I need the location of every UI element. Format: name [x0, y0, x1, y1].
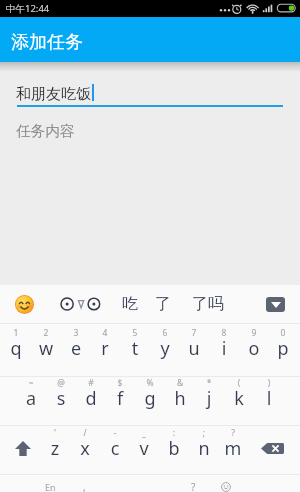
staticText: / — [70, 427, 100, 439]
staticText: ' — [40, 427, 70, 439]
staticText: % — [135, 377, 165, 389]
staticText: f — [105, 386, 135, 411]
staticText: y — [150, 336, 180, 361]
staticText: _ — [129, 427, 159, 439]
staticText: 0 — [268, 327, 298, 339]
button[interactable]: 0 — [268, 324, 298, 374]
button[interactable]: & — [165, 374, 195, 424]
staticText: v — [129, 436, 159, 461]
staticText: 吃 — [122, 294, 138, 314]
staticText: ? — [218, 427, 248, 439]
button[interactable]: / — [70, 424, 100, 474]
staticText: n — [189, 436, 219, 461]
button[interactable]: , — [69, 478, 99, 492]
staticText: 任务内容 — [16, 122, 75, 141]
staticText: 6 — [150, 327, 180, 339]
staticText: , — [83, 480, 86, 492]
button[interactable]: 吃 — [119, 292, 141, 316]
staticText: a — [16, 386, 46, 411]
button[interactable]: $ — [105, 374, 135, 424]
staticText: j — [194, 386, 224, 411]
staticText: # — [76, 377, 106, 389]
staticText: 5 — [120, 327, 150, 339]
button[interactable]: ' — [40, 424, 70, 474]
button[interactable]: 5 — [120, 324, 150, 374]
staticText: o — [239, 336, 269, 361]
staticText: b — [159, 436, 189, 461]
staticText: 3 — [61, 327, 91, 339]
button[interactable]: ~ — [16, 374, 46, 424]
staticText: m — [218, 436, 248, 461]
staticText: 和朋友吃饭 — [16, 85, 91, 104]
staticText: 中午12:44 — [6, 2, 50, 15]
button[interactable]: 了 — [152, 292, 174, 316]
button[interactable]: @ — [46, 374, 76, 424]
button[interactable]: Emoji panel — [212, 478, 240, 492]
staticText: c — [100, 436, 130, 461]
button[interactable]: # — [76, 374, 106, 424]
button[interactable]: _ — [129, 424, 159, 474]
button[interactable]: - — [100, 424, 130, 474]
button[interactable]: ; — [189, 424, 219, 474]
button[interactable]: ( — [224, 374, 254, 424]
staticText: En — [45, 481, 56, 492]
button[interactable]: % — [135, 374, 165, 424]
staticText: i — [209, 336, 239, 361]
button[interactable]: 3 — [61, 324, 91, 374]
staticText: t — [120, 336, 150, 361]
button[interactable]: En — [34, 478, 66, 492]
staticText: * — [194, 377, 224, 389]
staticText: ) — [254, 377, 284, 389]
staticText: k — [224, 386, 254, 411]
button[interactable]: 7 — [179, 324, 209, 374]
staticText: s — [46, 386, 76, 411]
staticText: 了吗 — [192, 294, 224, 314]
button[interactable]: ? — [179, 478, 207, 492]
button[interactable]: 6 — [150, 324, 180, 374]
staticText: x — [70, 436, 100, 461]
staticText: h — [165, 386, 195, 411]
button[interactable]: : — [159, 424, 189, 474]
staticText: e — [61, 336, 91, 361]
button[interactable]: Backspace — [250, 424, 295, 472]
button[interactable]: * — [194, 374, 224, 424]
staticText: r — [90, 336, 120, 361]
button[interactable]: Emoji — [15, 295, 34, 314]
staticText: $ — [105, 377, 135, 389]
staticText: g — [135, 386, 165, 411]
staticText: u — [179, 336, 209, 361]
staticText: 了 — [155, 294, 171, 314]
staticText: - — [100, 427, 130, 439]
staticText: ? — [191, 480, 196, 492]
staticText: 2 — [31, 327, 61, 339]
staticText: w — [31, 336, 61, 361]
button[interactable]: 9 — [239, 324, 269, 374]
staticText: d — [76, 386, 106, 411]
button[interactable]: 1 — [1, 324, 31, 374]
staticText: : — [159, 427, 189, 439]
staticText: ( — [224, 377, 254, 389]
staticText: 7 — [179, 327, 209, 339]
staticText: l — [254, 386, 284, 411]
staticText: ~ — [16, 377, 46, 389]
staticText: q — [1, 336, 31, 361]
button[interactable]: 2 — [31, 324, 61, 374]
button[interactable]: ? — [218, 424, 248, 474]
button[interactable]: 4 — [90, 324, 120, 374]
staticText: 8 — [209, 327, 239, 339]
staticText: @ — [46, 377, 76, 389]
staticText: 添加任务 — [11, 31, 83, 54]
staticText: ; — [189, 427, 219, 439]
button[interactable]: ) — [254, 374, 284, 424]
button[interactable]: Kaomoji candidate — [58, 295, 102, 315]
staticText: 1 — [1, 327, 31, 339]
button[interactable]: 了吗 — [189, 292, 227, 316]
staticText: & — [165, 377, 195, 389]
button[interactable]: Shift — [0, 424, 46, 472]
staticText: p — [268, 336, 298, 361]
button[interactable]: 8 — [209, 324, 239, 374]
button[interactable]: More candidates — [266, 297, 285, 312]
staticText: z — [40, 436, 70, 461]
staticText: 9 — [239, 327, 269, 339]
staticText: 4 — [90, 327, 120, 339]
